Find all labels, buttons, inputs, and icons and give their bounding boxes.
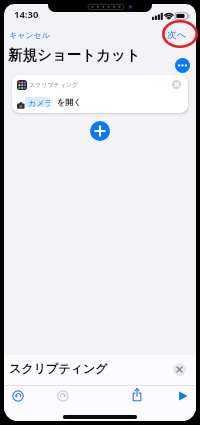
button[interactable]: 次へ	[165, 27, 185, 39]
button[interactable]	[127, 385, 147, 405]
button[interactable]	[172, 80, 181, 89]
button[interactable]: スクリプティング	[12, 75, 188, 113]
button[interactable]	[173, 386, 193, 406]
staticText: キャンセル	[9, 30, 50, 40]
button[interactable]: キャンセル	[8, 29, 49, 39]
button[interactable]	[173, 363, 186, 376]
staticText: カメラ	[28, 98, 50, 107]
button[interactable]	[8, 386, 28, 406]
button[interactable]: カメラ	[25, 97, 50, 107]
staticText: 次へ	[167, 29, 187, 41]
staticText: スクリプティング	[29, 81, 79, 89]
staticText: を開く	[57, 97, 82, 107]
button[interactable]	[53, 386, 73, 406]
staticText: 14:30	[14, 8, 39, 21]
button[interactable]	[175, 58, 190, 73]
staticText: 新規ショートカット	[8, 46, 141, 64]
button[interactable]	[90, 121, 110, 141]
staticText: スクリプティング	[9, 361, 108, 376]
